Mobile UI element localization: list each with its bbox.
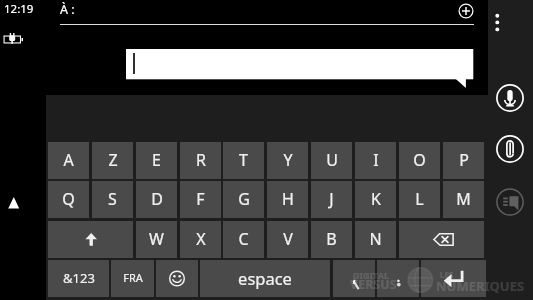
staticText: T (239, 149, 248, 171)
staticText: &123 (63, 269, 95, 287)
button[interactable]: T (223, 142, 264, 179)
staticText: I (373, 149, 379, 171)
staticText: . (396, 265, 401, 287)
button[interactable]: B (311, 221, 352, 258)
button[interactable]: O (399, 142, 440, 179)
button[interactable]: Voice input (496, 84, 524, 112)
staticText: R (196, 149, 206, 171)
button[interactable]: W (136, 221, 177, 258)
staticText: U (326, 149, 338, 171)
staticText: K (371, 188, 381, 210)
button[interactable]: . (377, 260, 419, 297)
button[interactable]: Backspace (399, 221, 484, 258)
staticText: S (108, 188, 117, 210)
staticText: VERSUS (350, 276, 397, 293)
staticText: H (282, 188, 294, 210)
staticText: L (415, 188, 424, 210)
button[interactable]: , (333, 260, 375, 297)
staticText: 12:19 (4, 1, 34, 17)
button[interactable]: C (223, 221, 264, 258)
staticText: Y (283, 149, 293, 171)
staticText: C (238, 228, 249, 250)
button[interactable]: FRA (111, 260, 154, 297)
button[interactable]: E (136, 142, 177, 179)
staticText: O (413, 149, 426, 171)
staticText: F (196, 188, 205, 210)
staticText: X (196, 228, 206, 250)
staticText: Z (108, 149, 118, 171)
button[interactable]: espace (200, 260, 330, 297)
staticText: , (352, 265, 357, 287)
staticText: M (456, 188, 471, 210)
button[interactable]: Z (92, 142, 133, 179)
button[interactable]: Back (4, 192, 24, 214)
button[interactable]: D (136, 181, 177, 218)
button[interactable]: Y (267, 142, 308, 179)
staticText: LES (440, 269, 454, 280)
button[interactable]: F (180, 181, 221, 218)
button[interactable]: Shift (48, 221, 133, 258)
button[interactable]: Q (48, 181, 89, 218)
button[interactable]: J (311, 181, 352, 218)
button[interactable]: H (267, 181, 308, 218)
button[interactable]: Enter (421, 260, 486, 297)
button[interactable]: A (48, 142, 89, 179)
button[interactable]: L (399, 181, 440, 218)
button[interactable]: G (223, 181, 264, 218)
staticText: NUMERIQUES (436, 277, 525, 295)
staticText: P (459, 149, 469, 171)
staticText: espace (238, 267, 292, 289)
button[interactable]: P (443, 142, 484, 179)
staticText: À : (60, 1, 75, 18)
button[interactable]: &123 (48, 260, 109, 297)
staticText: W (149, 228, 164, 250)
button[interactable]: S (92, 181, 133, 218)
button[interactable]: Send (496, 188, 524, 216)
staticText: G (238, 188, 250, 210)
button[interactable]: M (443, 181, 484, 218)
button[interactable]: V (267, 221, 308, 258)
button[interactable]: More options (491, 6, 504, 39)
button[interactable]: X (180, 221, 221, 258)
staticText: A (63, 149, 74, 171)
staticText: E (152, 149, 161, 171)
button[interactable]: U (311, 142, 352, 179)
staticText: Q (62, 188, 75, 210)
button[interactable]: Emoji (156, 260, 198, 297)
button[interactable]: Attach (496, 135, 524, 163)
staticText: FRA (123, 270, 143, 285)
staticText: J (329, 188, 334, 210)
button[interactable]: N (355, 221, 396, 258)
button[interactable]: I (355, 142, 396, 179)
button[interactable]: R (180, 142, 221, 179)
staticText: D (151, 188, 163, 210)
button[interactable]: Add recipient (458, 3, 474, 19)
staticText: DIGITAL (353, 269, 389, 281)
staticText: V (283, 228, 293, 250)
staticText: B (326, 228, 337, 250)
button[interactable]: K (355, 181, 396, 218)
staticText: N (369, 228, 382, 250)
